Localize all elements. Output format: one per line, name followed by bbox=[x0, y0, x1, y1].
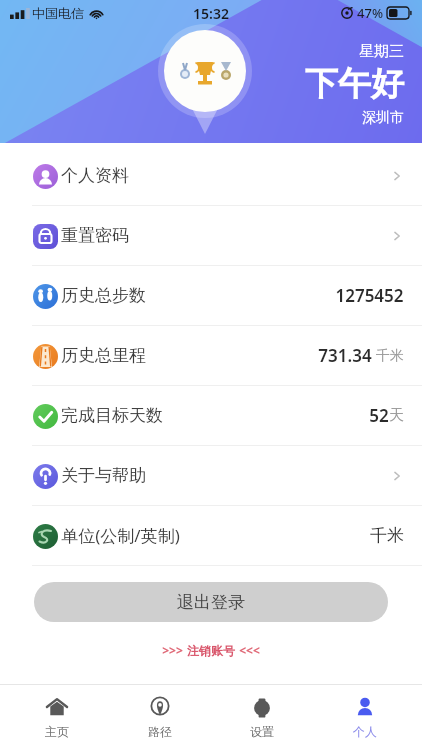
staticText: 关于与帮助 bbox=[61, 465, 146, 486]
button[interactable]: 历史总里程 bbox=[0, 326, 422, 385]
button[interactable]: 设置 bbox=[217, 685, 307, 750]
button[interactable]: 主页 bbox=[12, 685, 102, 750]
button[interactable]: 路径 bbox=[115, 685, 205, 750]
staticText: 深圳市 bbox=[362, 109, 404, 127]
button[interactable]: 重置密码 bbox=[0, 206, 422, 265]
staticText: 下午好 bbox=[305, 63, 404, 105]
staticText: <<< bbox=[239, 642, 260, 658]
staticText: 退出登录 bbox=[177, 592, 245, 613]
button[interactable]: 退出登录 bbox=[34, 582, 388, 622]
button[interactable]: 单位(公制/英制) bbox=[0, 506, 422, 565]
staticText: 47% bbox=[357, 4, 383, 22]
button[interactable]: 完成目标天数 bbox=[0, 386, 422, 445]
staticText: 重置密码 bbox=[61, 225, 129, 246]
staticText: 中国电信 bbox=[32, 5, 84, 21]
button[interactable]: 历史总步数 bbox=[0, 266, 422, 325]
staticText: 历史总里程 bbox=[61, 345, 146, 366]
staticText: 路径 bbox=[148, 724, 172, 739]
button[interactable]: 关于与帮助 bbox=[0, 446, 422, 505]
staticText: 千米 bbox=[376, 347, 404, 365]
staticText: 个人 bbox=[353, 724, 377, 739]
staticText: 设置 bbox=[250, 724, 274, 739]
staticText: 主页 bbox=[45, 724, 69, 739]
staticText: 历史总步数 bbox=[61, 285, 146, 306]
staticText: 天 bbox=[389, 406, 404, 425]
button[interactable]: 个人 bbox=[320, 685, 410, 750]
staticText: 15:32 bbox=[193, 4, 229, 23]
staticText: 星期三 bbox=[359, 42, 404, 61]
button[interactable]: 个人资料 bbox=[0, 146, 422, 205]
staticText: 个人资料 bbox=[61, 165, 129, 186]
staticText: 单位(公制/英制) bbox=[61, 524, 180, 547]
button[interactable]: >>> bbox=[0, 642, 422, 658]
button[interactable]: Achievements bbox=[163, 28, 247, 128]
staticText: 千米 bbox=[370, 525, 404, 546]
staticText: 完成目标天数 bbox=[61, 405, 163, 426]
staticText: 731.34 bbox=[318, 344, 372, 367]
staticText: 52 bbox=[369, 404, 389, 427]
staticText: >>> bbox=[162, 642, 183, 658]
staticText: 注销账号 bbox=[187, 643, 235, 658]
staticText: 1275452 bbox=[335, 284, 404, 307]
